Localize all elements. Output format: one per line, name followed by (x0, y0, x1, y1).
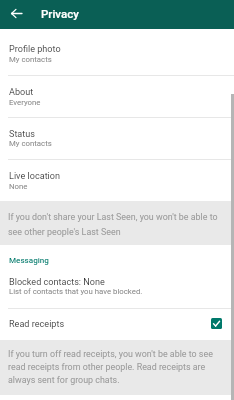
staticText: My contacts (9, 55, 52, 64)
staticText: Profile photo (9, 44, 61, 55)
staticText: Read receipts (9, 319, 65, 330)
staticText: About (9, 87, 34, 98)
staticText: Everyone (9, 98, 41, 107)
button[interactable]: About (0, 76, 234, 117)
button[interactable]: Live location (0, 160, 234, 201)
staticText: If you don't share your Last Seen, you w… (8, 212, 218, 222)
staticText: Privacy (41, 7, 79, 20)
button[interactable]: Profile photo (0, 29, 234, 75)
button[interactable]: Status (0, 118, 234, 159)
staticText: Status (9, 129, 36, 140)
staticText: see other people's Last Seen (8, 227, 121, 237)
staticText: Live location (9, 171, 61, 182)
button[interactable]: Blocked contacts: None (0, 268, 234, 308)
staticText: Blocked contacts: None (9, 277, 105, 288)
staticText: read receipts from other people. Read re… (8, 362, 206, 372)
button[interactable]: Back (0, 0, 31, 29)
button[interactable]: Read receipts (0, 309, 234, 340)
staticText: If you turn off read receipts, you won't… (8, 349, 213, 359)
staticText: Messaging (9, 255, 49, 264)
staticText: always sent for group chats. (8, 375, 120, 385)
staticText: None (9, 182, 28, 191)
staticText: My contacts (9, 139, 52, 148)
staticText: List of contacts that you have blocked. (9, 287, 143, 296)
